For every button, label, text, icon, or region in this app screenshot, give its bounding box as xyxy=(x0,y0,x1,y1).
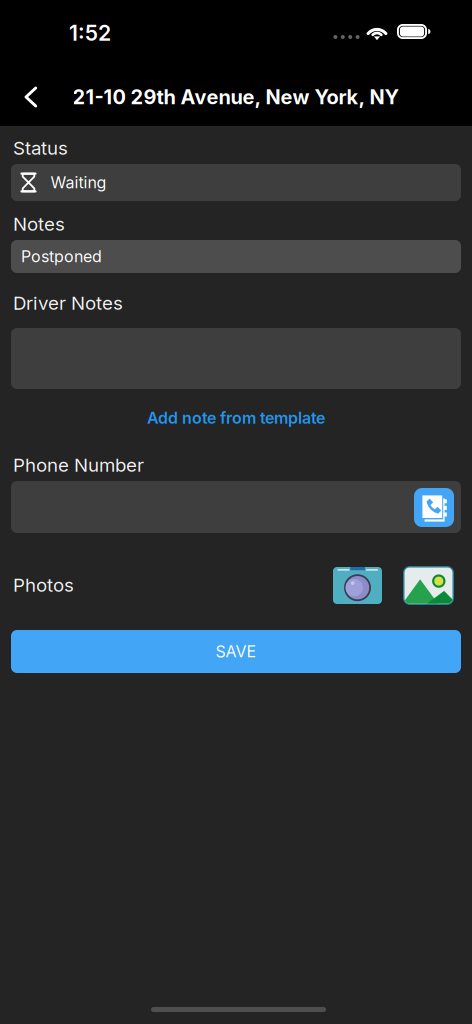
staticText: Add note from template xyxy=(147,408,325,428)
staticText: Waiting xyxy=(50,173,106,192)
staticText: Notes xyxy=(13,213,65,235)
button[interactable]: Waiting xyxy=(0,0,450,37)
staticText: Status xyxy=(13,137,68,159)
button[interactable]: SAVE xyxy=(0,0,450,43)
staticText: 21-10 29th Avenue, New York, NY xyxy=(72,85,399,109)
staticText: Photos xyxy=(13,574,74,596)
staticText: Postponed xyxy=(21,247,102,266)
staticText: Driver Notes xyxy=(13,292,123,314)
staticText: Phone Number xyxy=(13,454,144,476)
staticText: SAVE xyxy=(215,642,256,661)
staticText: 1:52 xyxy=(69,20,111,46)
